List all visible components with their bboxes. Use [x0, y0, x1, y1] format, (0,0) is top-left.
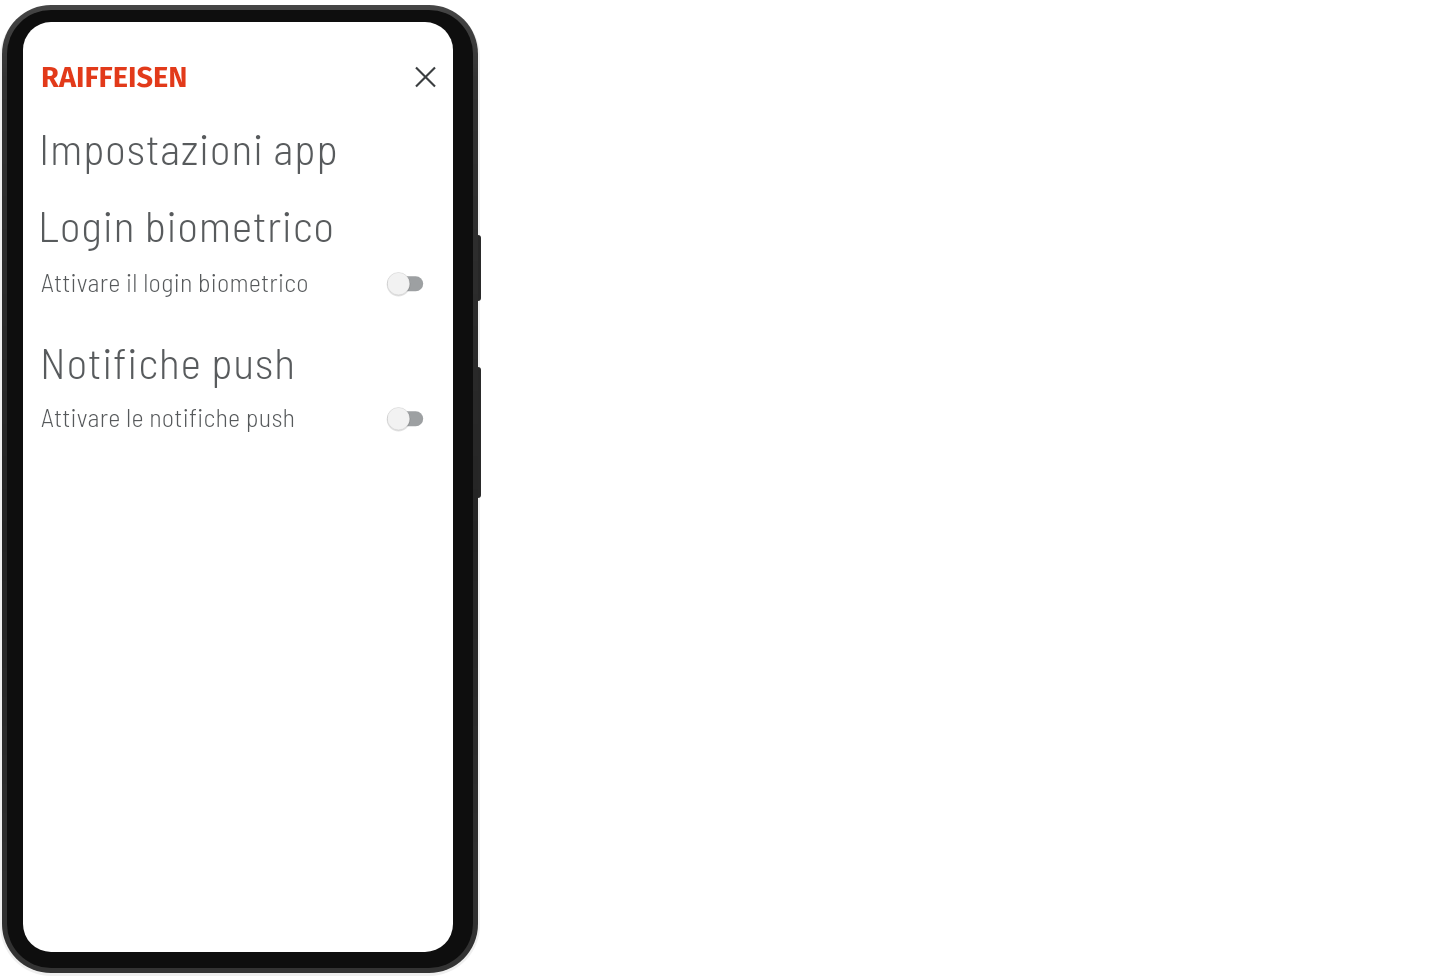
staticText: RAIFFEISEN	[41, 60, 188, 95]
staticText: Login biometrico	[38, 198, 335, 251]
button[interactable]: Attivare il login biometrico	[28, 263, 430, 305]
staticText: Impostazioni app	[39, 121, 339, 174]
button[interactable]	[403, 55, 448, 99]
staticText: Attivare il login biometrico	[41, 266, 309, 297]
staticText: Notifiche push	[40, 335, 296, 388]
staticText: Attivare le notifiche push	[41, 401, 296, 432]
button[interactable]: Attivare le notifiche push	[28, 398, 430, 440]
